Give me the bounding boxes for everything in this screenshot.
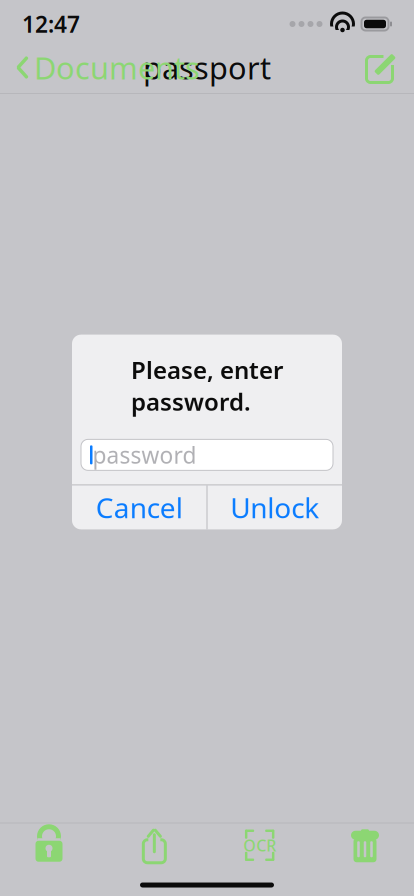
staticText: 12:47 [22,9,80,39]
button[interactable]: Documents [8,39,208,96]
button[interactable]: Lock [22,818,76,872]
staticText: OCR [243,835,276,856]
button[interactable]: OCR [233,818,287,872]
staticText: Unlock [230,489,319,526]
staticText: passport [143,47,271,88]
button[interactable]: Edit [356,44,406,90]
staticText: Documents [34,47,200,88]
button[interactable]: Share [127,817,181,873]
staticText: Please, enter password. [131,354,283,417]
button[interactable]: Cancel [72,485,206,529]
staticText: Cancel [96,489,183,526]
staticText: password [92,440,196,470]
button[interactable]: Delete [338,816,392,874]
button[interactable]: Unlock [207,485,342,529]
